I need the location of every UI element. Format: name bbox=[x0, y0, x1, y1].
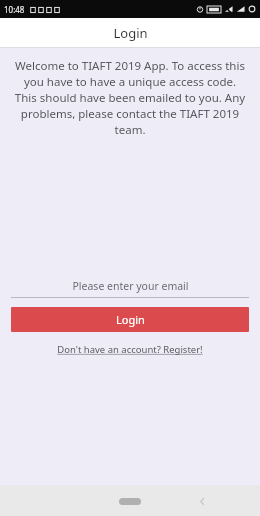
button[interactable]: Back bbox=[192, 491, 212, 511]
staticText: Login bbox=[116, 312, 145, 327]
button[interactable]: Don't have an account? Register! bbox=[51, 341, 209, 358]
button[interactable]: Please enter your email bbox=[11, 277, 249, 298]
staticText: 10:48 bbox=[4, 4, 25, 15]
staticText: Login bbox=[113, 24, 148, 42]
staticText: Don't have an account? Register! bbox=[57, 343, 203, 356]
button[interactable]: Home bbox=[110, 490, 150, 512]
staticText: Please enter your email bbox=[72, 279, 189, 293]
button[interactable]: Login bbox=[11, 307, 249, 332]
staticText: Welcome to TIAFT 2019 App. To access thi… bbox=[12, 58, 248, 138]
